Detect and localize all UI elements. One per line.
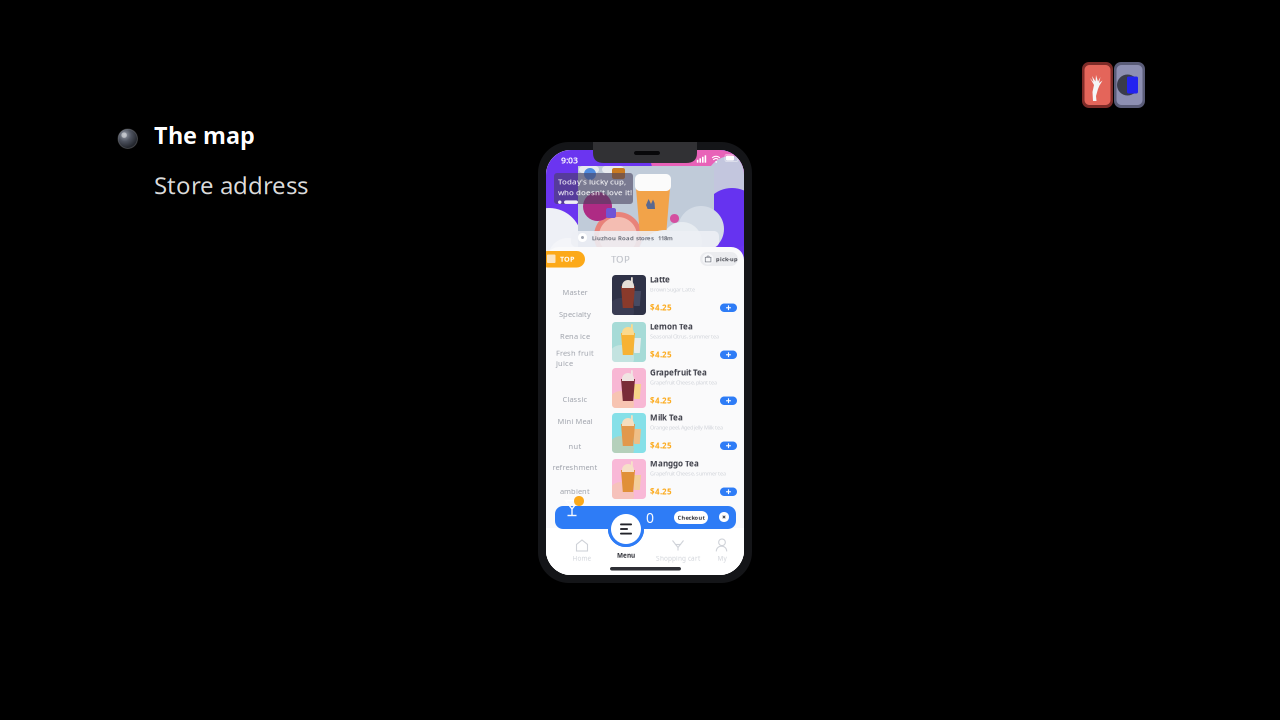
staticText: refreshment [552, 462, 597, 472]
staticText: Manggo Tea [650, 458, 699, 469]
staticText: $4.25 [650, 486, 672, 497]
button[interactable]: Home [572, 539, 591, 565]
staticText: Today's lucky cup, [558, 176, 626, 187]
staticText: pick-up [716, 255, 738, 263]
staticText: Latte [650, 274, 670, 285]
staticText: $4.25 [650, 440, 672, 451]
staticText: nut [568, 441, 581, 451]
staticText: Grapefruit Tea [650, 367, 707, 378]
staticText: $4.25 [650, 395, 672, 406]
staticText: Menu [617, 551, 635, 560]
button[interactable]: Lemon Tea [612, 322, 744, 369]
staticText: Checkout [677, 514, 704, 521]
staticText: ambient [560, 486, 590, 496]
staticText: Rena ice [560, 331, 590, 341]
button[interactable]: Rena ice [550, 327, 600, 345]
button[interactable]: Latte [612, 275, 744, 322]
staticText: Seasonal Citrus, summer tea [650, 333, 719, 340]
button[interactable]: Close cart [719, 512, 729, 522]
button[interactable]: pick-up [700, 252, 738, 266]
button[interactable]: Mini Meal [550, 412, 600, 430]
button[interactable]: Grapefruit Tea [612, 368, 744, 415]
staticText: TOP [560, 254, 574, 264]
button[interactable]: My [715, 539, 728, 565]
staticText: Lemon Tea [650, 321, 693, 332]
button[interactable]: ambient [550, 482, 600, 500]
staticText: Shopping cart [656, 554, 700, 563]
staticText: My [717, 554, 726, 563]
button[interactable]: Classic [550, 390, 600, 408]
staticText: Store address [154, 169, 308, 201]
staticText: $4.25 [650, 349, 672, 360]
button[interactable]: Checkout [674, 511, 708, 524]
staticText: Mini Meal [557, 416, 592, 426]
button[interactable]: Menu [617, 551, 635, 565]
staticText: Classic [562, 394, 587, 404]
button[interactable]: refreshment [550, 458, 600, 476]
staticText: Fresh fruit juice [556, 348, 594, 368]
button[interactable]: Menu [608, 511, 644, 547]
button[interactable]: nut [550, 437, 600, 455]
staticText: Grapefruit Cheese, summer tea [650, 470, 726, 477]
staticText: Liuzhou Road stores 118m [592, 234, 673, 242]
button[interactable]: Master [550, 283, 600, 301]
button[interactable]: Manggo Tea [612, 459, 744, 506]
button[interactable]: TOP [539, 251, 585, 267]
staticText: Home [572, 554, 591, 563]
button[interactable]: Fresh fruit juice [550, 349, 600, 367]
staticText: who doesn't love it! [558, 187, 632, 197]
staticText: Milk Tea [650, 412, 683, 423]
staticText: 9:03 [561, 154, 578, 166]
staticText: 0 [646, 508, 654, 527]
button[interactable]: Specialty [550, 305, 600, 323]
staticText: TOP [611, 252, 630, 266]
staticText: Grapefruit Cheese, plant tea [650, 379, 717, 386]
staticText: Brown Sugar Latte [650, 286, 695, 293]
staticText: Specialty [559, 309, 591, 319]
staticText: The map [154, 119, 255, 151]
staticText: Orange peel, Aged jelly Milk tea [650, 424, 723, 431]
button[interactable]: Shopping cart [656, 539, 700, 565]
staticText: $4.25 [650, 302, 672, 313]
button[interactable]: Milk Tea [612, 413, 744, 460]
staticText: Master [562, 287, 587, 297]
